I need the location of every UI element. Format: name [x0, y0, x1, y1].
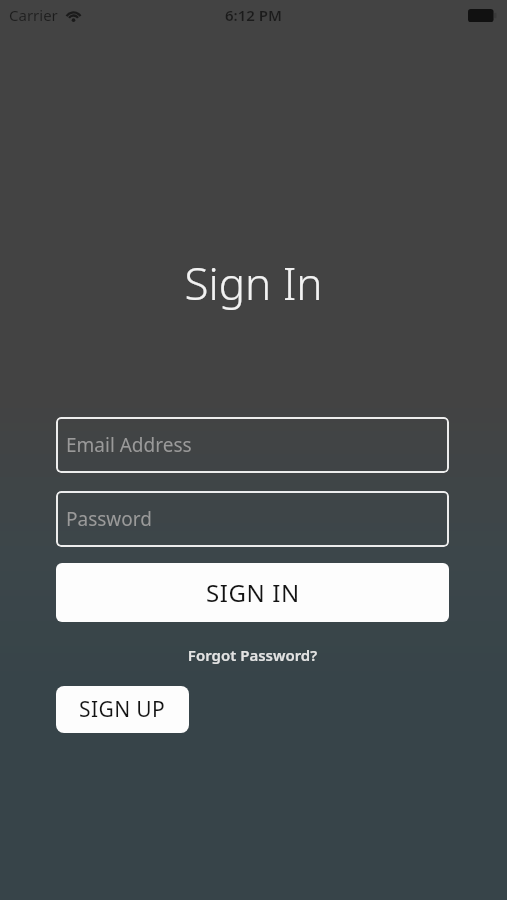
- button[interactable]: Forgot Password?: [56, 642, 449, 668]
- staticText: 6:12 PM: [225, 5, 282, 25]
- staticText: SIGN IN: [206, 576, 300, 609]
- staticText: Password: [66, 506, 152, 532]
- staticText: Email Address: [66, 432, 192, 458]
- button[interactable]: SIGN UP: [56, 686, 189, 733]
- staticText: Sign In: [0, 253, 507, 313]
- button[interactable]: SIGN IN: [56, 563, 449, 622]
- button[interactable]: Password: [56, 491, 449, 547]
- staticText: SIGN UP: [79, 695, 166, 724]
- staticText: Carrier: [9, 5, 58, 25]
- button[interactable]: Email Address: [56, 417, 449, 473]
